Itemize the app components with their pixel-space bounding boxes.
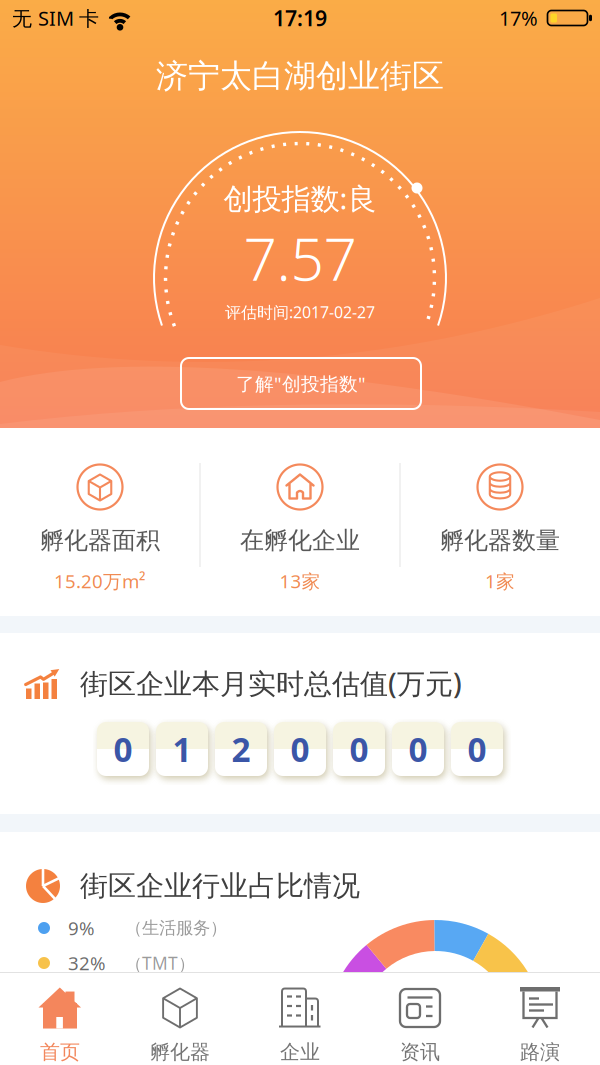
staticText: 9% [68,916,95,940]
button[interactable]: 资讯 [360,973,480,1065]
staticText: 孵化器数量 [440,526,560,555]
button[interactable]: 首页 [0,973,120,1065]
staticText: 资讯 [400,1040,440,1064]
button[interactable]: 孵化器 [120,973,240,1065]
staticText: 街区企业本月实时总估值(万元) [80,664,462,702]
button[interactable]: 了解"创投指数" [181,358,421,409]
staticText: 1 [172,727,191,771]
staticText: 13家 [279,569,320,593]
staticText: 32% [68,951,106,975]
staticText: 2 [231,727,250,771]
staticText: 7.57 [243,219,356,297]
staticText: （TMT） [125,951,195,974]
staticText: 济宁太白湖创业街区 [156,56,444,96]
button[interactable]: 路演 [480,973,600,1065]
staticText: 17% [499,5,538,31]
staticText: 在孵化企业 [240,526,360,555]
staticText: 0 [467,727,486,771]
staticText: 街区企业行业占比情况 [80,869,360,903]
staticText: 无 SIM 卡 [12,5,99,31]
staticText: 创投指数:良 [223,178,376,217]
button[interactable]: 企业 [240,973,360,1065]
staticText: 路演 [520,1040,560,1064]
staticText: 15.20万m² [54,569,146,593]
staticText: 1家 [485,569,515,593]
staticText: 了解"创投指数" [236,371,366,396]
staticText: 孵化器 [150,1040,210,1064]
staticText: 17:19 [273,4,327,32]
staticText: （生活服务） [125,917,227,939]
staticText: 首页 [40,1040,80,1064]
staticText: 0 [349,727,368,771]
staticText: 0 [113,727,132,771]
staticText: 0 [290,727,309,771]
staticText: 0 [408,727,427,771]
staticText: 孵化器面积 [40,526,160,555]
staticText: 企业 [280,1040,320,1064]
staticText: 评估时间:2017-02-27 [225,301,375,323]
